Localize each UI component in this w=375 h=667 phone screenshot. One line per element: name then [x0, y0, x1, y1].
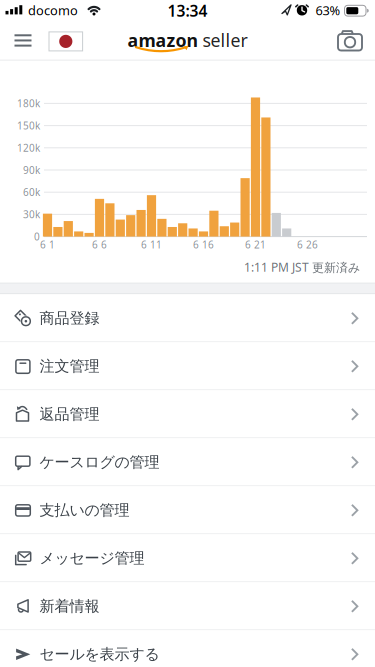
staticText: ケースログの管理 [39, 453, 159, 472]
staticText: 1:11 PM JST 更新済み [244, 259, 360, 275]
staticText: セールを表示する [39, 645, 159, 664]
staticText: 180k [17, 97, 40, 110]
button[interactable]: 新着情報 [0, 582, 375, 630]
button[interactable]: メッセージ管理 [0, 534, 375, 582]
staticText: 120k [17, 141, 40, 155]
staticText: 0 [34, 230, 40, 243]
button[interactable] [329, 20, 369, 61]
staticText: 90k [23, 163, 40, 177]
staticText: amazon [127, 28, 198, 52]
staticText: 6 11 [141, 238, 162, 251]
staticText: メッセージ管理 [39, 549, 144, 568]
staticText: 支払いの管理 [39, 501, 129, 520]
staticText: 6 6 [92, 238, 107, 251]
button[interactable]: セールを表示する [0, 630, 375, 667]
button[interactable]: 商品登録 [0, 294, 375, 342]
staticText: 30k [23, 208, 40, 221]
staticText: 注文管理 [39, 357, 99, 376]
staticText: 60k [23, 185, 40, 199]
button[interactable]: 返品管理 [0, 390, 375, 438]
staticText: 新着情報 [39, 597, 99, 616]
staticText: 6 16 [193, 238, 214, 251]
staticText: 13:34 [167, 0, 207, 21]
button[interactable] [0, 20, 40, 61]
staticText: 返品管理 [39, 405, 99, 424]
staticText: seller [202, 28, 247, 52]
staticText: 6 1 [40, 238, 55, 251]
button[interactable]: 支払いの管理 [0, 486, 375, 534]
staticText: docomo [28, 1, 78, 19]
button[interactable] [0, 20, 375, 61]
staticText: 6 21 [245, 238, 266, 251]
button[interactable]: ケースログの管理 [0, 438, 375, 486]
button[interactable]: 注文管理 [0, 342, 375, 390]
staticText: 150k [17, 119, 40, 132]
staticText: 商品登録 [39, 309, 99, 328]
staticText: 6 26 [297, 238, 318, 251]
staticText: 63% [315, 2, 340, 19]
